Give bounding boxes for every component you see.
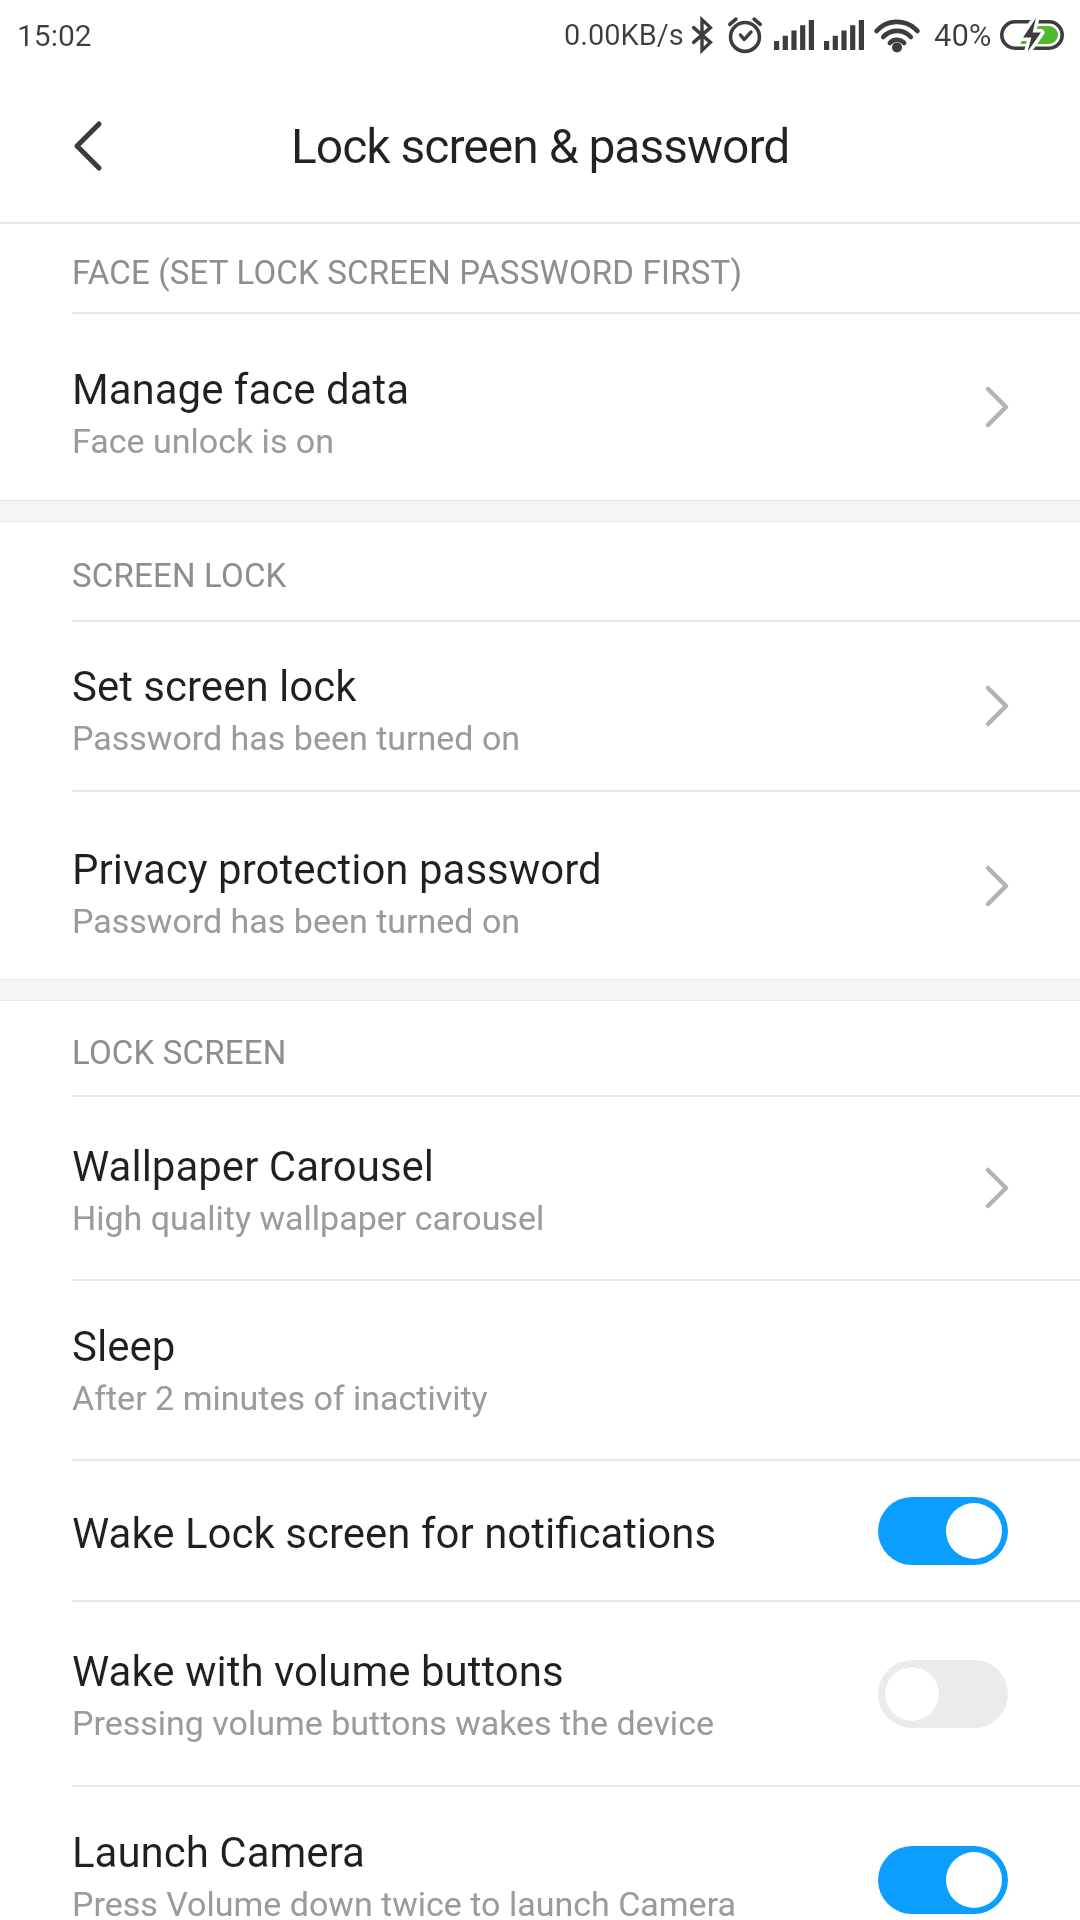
- staticText: After 2 minutes of inactivity: [72, 1378, 488, 1418]
- button[interactable]: Set screen lock: [0, 622, 1080, 790]
- staticText: High quality wallpaper carousel: [72, 1198, 545, 1238]
- staticText: Face unlock is on: [72, 421, 335, 461]
- button[interactable]: [878, 1846, 1008, 1914]
- staticText: Launch Camera: [72, 1828, 365, 1877]
- staticText: 40%: [934, 17, 992, 53]
- button[interactable]: Wake with volume buttons: [0, 1602, 1080, 1785]
- staticText: Wake Lock screen for notifications: [72, 1509, 717, 1558]
- staticText: Wake with volume buttons: [72, 1647, 564, 1696]
- button[interactable]: Manage face data: [0, 314, 1080, 500]
- button[interactable]: Wake Lock screen for notifications: [0, 1461, 1080, 1600]
- staticText: Password has been turned on: [72, 901, 521, 941]
- staticText: Manage face data: [72, 365, 410, 414]
- staticText: 15:02: [17, 18, 92, 53]
- staticText: Set screen lock: [72, 662, 357, 711]
- button[interactable]: [878, 1497, 1008, 1565]
- staticText: Privacy protection password: [72, 845, 602, 894]
- button[interactable]: Launch Camera: [0, 1787, 1080, 1920]
- staticText: Wallpaper Carousel: [72, 1142, 435, 1191]
- button[interactable]: Sleep: [0, 1281, 1080, 1459]
- staticText: Press Volume down twice to launch Camera: [72, 1884, 736, 1920]
- button[interactable]: [62, 120, 114, 172]
- staticText: Sleep: [72, 1322, 176, 1371]
- staticText: Password has been turned on: [72, 718, 521, 758]
- button[interactable]: [878, 1660, 1008, 1728]
- button[interactable]: Wallpaper Carousel: [0, 1097, 1080, 1279]
- staticText: SCREEN LOCK: [72, 556, 287, 595]
- staticText: FACE (SET LOCK SCREEN PASSWORD FIRST): [72, 253, 743, 292]
- staticText: LOCK SCREEN: [72, 1033, 287, 1072]
- staticText: Pressing volume buttons wakes the device: [72, 1703, 714, 1743]
- button[interactable]: Privacy protection password: [0, 792, 1080, 979]
- staticText: 0.00KB/s: [564, 18, 684, 52]
- staticText: Lock screen & password: [291, 118, 790, 174]
